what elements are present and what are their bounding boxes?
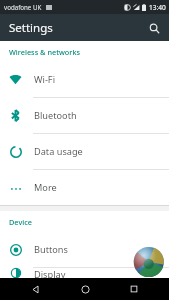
button[interactable]: Bluetooth	[0, 98, 169, 133]
button[interactable]: Back	[20, 278, 50, 300]
button[interactable]: Data usage	[0, 134, 169, 169]
staticText: More	[34, 181, 57, 194]
button[interactable]: Display	[0, 268, 169, 278]
staticText: vodafone UK	[4, 3, 42, 11]
staticText: Wireless & networks	[9, 47, 81, 57]
button[interactable]: Wi-Fi	[0, 62, 169, 97]
staticText: Bluetooth	[34, 109, 77, 122]
staticText: Wi-Fi	[34, 73, 56, 86]
button[interactable]: Recent apps	[119, 278, 149, 300]
staticText: Buttons	[34, 243, 68, 256]
button[interactable]: Search	[143, 17, 165, 39]
staticText: Display	[34, 268, 66, 278]
staticText: 13:40	[149, 3, 166, 12]
staticText: Device	[9, 217, 32, 227]
staticText: Data usage	[34, 145, 83, 158]
button[interactable]: Home	[70, 278, 100, 300]
button[interactable]: Buttons	[0, 232, 169, 267]
staticText: Settings	[9, 20, 53, 36]
button[interactable]: More	[0, 170, 169, 205]
